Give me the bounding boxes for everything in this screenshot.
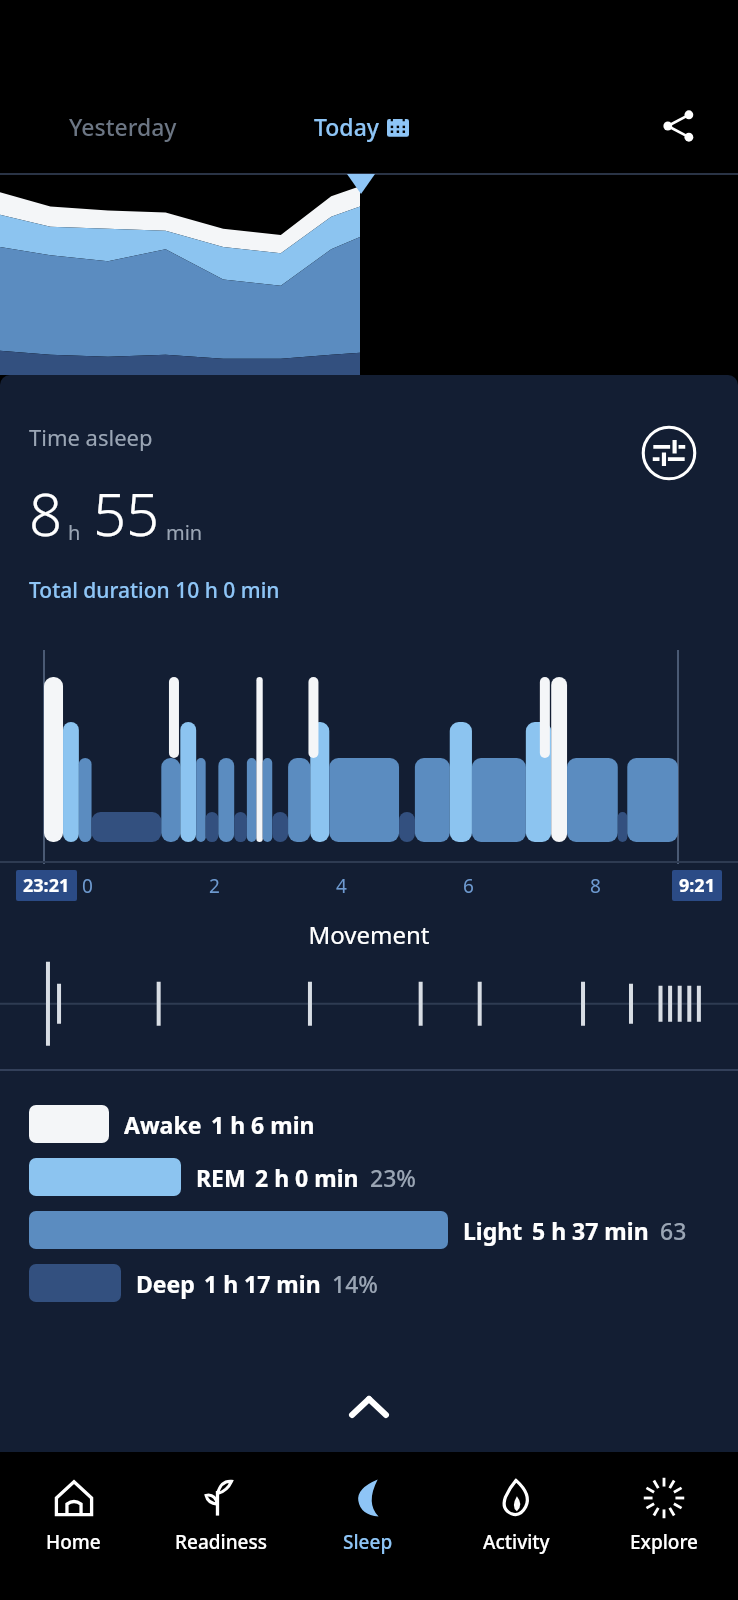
staticText: 1 h 6 min: [211, 1109, 315, 1140]
staticText: Total duration 10 h 0 min: [29, 576, 280, 605]
button[interactable]: Today: [246, 80, 476, 172]
staticText: 9:21: [679, 873, 715, 898]
staticText: Light: [463, 1215, 523, 1246]
staticText: Movement: [0, 918, 738, 951]
staticText: 6: [463, 873, 474, 899]
button[interactable]: Light: [29, 1210, 738, 1250]
staticText: 23:21: [23, 873, 70, 898]
staticText: 8: [590, 873, 601, 899]
staticText: Readiness: [175, 1529, 267, 1555]
staticText: h: [68, 519, 81, 546]
staticText: 2: [209, 873, 220, 899]
button[interactable]: Deep: [29, 1263, 738, 1303]
button[interactable]: Sleep settings: [638, 422, 700, 484]
staticText: 23%: [370, 1162, 416, 1193]
staticText: Time asleep: [29, 422, 153, 452]
staticText: Today: [314, 111, 379, 142]
staticText: Explore: [630, 1529, 698, 1555]
staticText: 1 h 17 min: [204, 1268, 321, 1299]
staticText: 55: [93, 474, 160, 553]
staticText: 14%: [332, 1268, 378, 1299]
staticText: 63: [660, 1215, 687, 1246]
button[interactable]: Yesterday: [0, 80, 246, 172]
staticText: 4: [336, 873, 347, 899]
button[interactable]: REM: [29, 1157, 738, 1197]
staticText: min: [166, 519, 203, 546]
staticText: 8: [29, 474, 63, 553]
staticText: Yesterday: [69, 111, 177, 142]
staticText: 5 h 37 min: [532, 1215, 649, 1246]
button[interactable]: Explore: [590, 1452, 738, 1600]
staticText: Awake: [124, 1109, 202, 1140]
staticText: Activity: [483, 1529, 550, 1555]
staticText: Sleep: [343, 1529, 393, 1555]
staticText: 2 h 0 min: [255, 1162, 359, 1193]
button[interactable]: Collapse: [0, 1372, 738, 1442]
button[interactable]: Home: [0, 1452, 147, 1600]
button[interactable]: Sleep: [294, 1452, 442, 1600]
staticText: Home: [46, 1529, 101, 1555]
staticText: Deep: [136, 1268, 195, 1299]
staticText: 0: [82, 873, 93, 899]
button[interactable]: Activity: [442, 1452, 590, 1600]
staticText: REM: [196, 1162, 246, 1193]
button[interactable]: Share: [618, 80, 738, 172]
button[interactable]: Awake: [29, 1104, 738, 1144]
button[interactable]: Readiness: [147, 1452, 294, 1600]
